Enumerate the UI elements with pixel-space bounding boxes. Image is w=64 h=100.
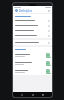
- staticText: Definições: [19, 9, 47, 13]
- button[interactable]: Download: [45, 69, 51, 74]
- button[interactable]: [13, 28, 52, 33]
- button[interactable]: [13, 18, 52, 23]
- button[interactable]: Menu: [15, 9, 18, 12]
- button[interactable]: [13, 23, 52, 28]
- button[interactable]: [13, 40, 52, 45]
- button[interactable]: Download: [45, 61, 51, 66]
- button[interactable]: Recent apps: [42, 94, 44, 96]
- button[interactable]: [13, 33, 52, 38]
- button[interactable]: Download: [13, 67, 52, 75]
- button[interactable]: Download: [45, 53, 51, 58]
- button[interactable]: Download: [13, 59, 52, 67]
- button[interactable]: Download: [13, 51, 52, 59]
